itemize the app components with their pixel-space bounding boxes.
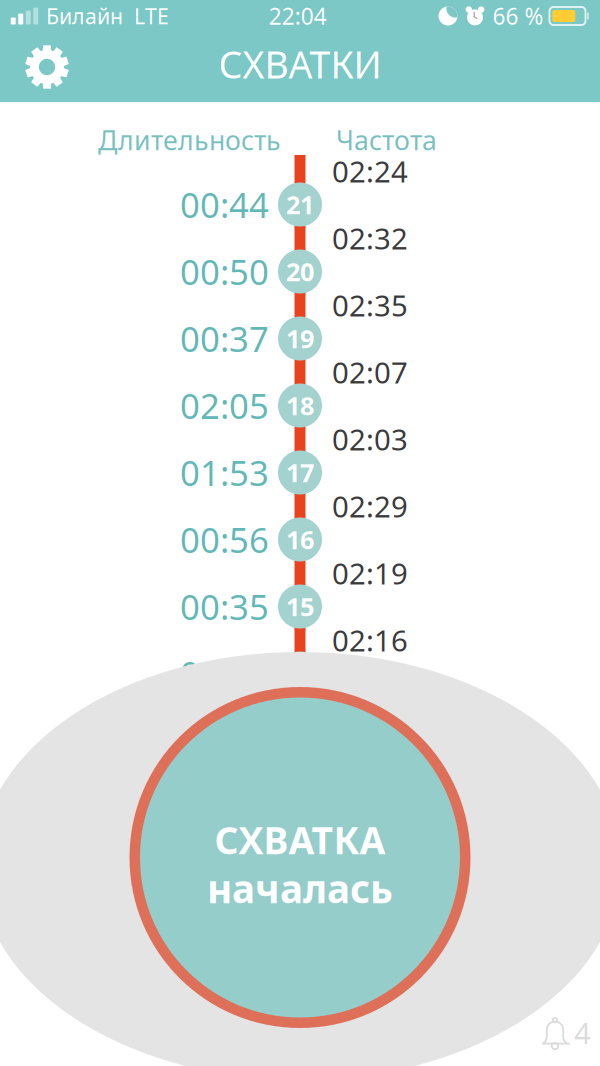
staticText: 00:44: [180, 181, 269, 227]
staticText: 02:35: [332, 285, 408, 324]
staticText: 00:50: [180, 248, 269, 294]
button[interactable]: Notifications: [540, 1011, 600, 1066]
staticText: 17: [286, 456, 314, 489]
staticText: Частота: [336, 122, 437, 158]
staticText: СХВАТКА: [214, 815, 385, 865]
staticText: 02:16: [332, 620, 408, 659]
staticText: 15: [286, 590, 314, 623]
staticText: 21: [286, 188, 314, 221]
staticText: 02:32: [332, 218, 408, 257]
staticText: СХВАТКИ: [218, 39, 381, 89]
staticText: Длительность: [98, 122, 281, 158]
staticText: 00:35: [180, 583, 269, 629]
staticText: 02:03: [332, 419, 408, 458]
staticText: 66 %: [492, 1, 543, 31]
staticText: 20: [286, 255, 314, 288]
staticText: началась: [207, 863, 393, 914]
staticText: 22:04: [269, 1, 327, 31]
staticText: 02:05: [180, 382, 269, 428]
staticText: 00:56: [180, 516, 269, 562]
staticText: 00:43: [180, 650, 269, 696]
staticText: 4: [574, 1013, 591, 1052]
button[interactable]: Settings: [0, 35, 94, 99]
staticText: 16: [286, 523, 314, 556]
staticText: Билайн: [46, 2, 123, 30]
staticText: 02:29: [332, 486, 408, 525]
staticText: 01:53: [180, 449, 269, 495]
staticText: 19: [286, 322, 314, 355]
staticText: 02:07: [332, 352, 408, 391]
staticText: 02:24: [332, 151, 408, 190]
staticText: 18: [286, 389, 314, 422]
staticText: LTE: [134, 2, 169, 30]
staticText: 02:19: [332, 553, 408, 592]
staticText: 00:37: [180, 315, 269, 361]
staticText: 14: [286, 657, 314, 690]
button[interactable]: СХВАТКА: [129, 687, 470, 1028]
